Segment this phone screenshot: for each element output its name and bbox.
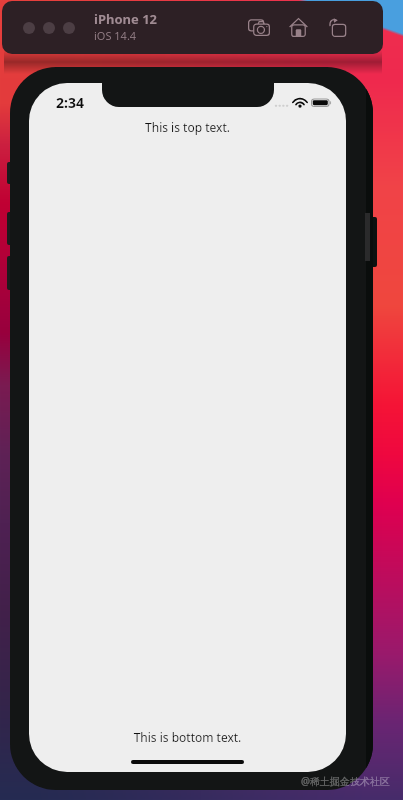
staticText: 2:34 — [56, 93, 84, 112]
staticText: This is bottom text. — [29, 729, 346, 745]
button[interactable]: Screenshot — [243, 11, 275, 43]
button[interactable] — [43, 22, 55, 34]
staticText: iPhone 12 — [94, 10, 157, 28]
button[interactable]: Home — [282, 11, 314, 43]
button[interactable]: Rotate — [321, 11, 353, 43]
button[interactable] — [23, 22, 35, 34]
staticText: This is top text. — [29, 119, 346, 135]
button[interactable] — [63, 22, 75, 34]
staticText: @稀土掘金技术社区 — [301, 774, 390, 788]
staticText: iOS 14.4 — [94, 28, 137, 43]
